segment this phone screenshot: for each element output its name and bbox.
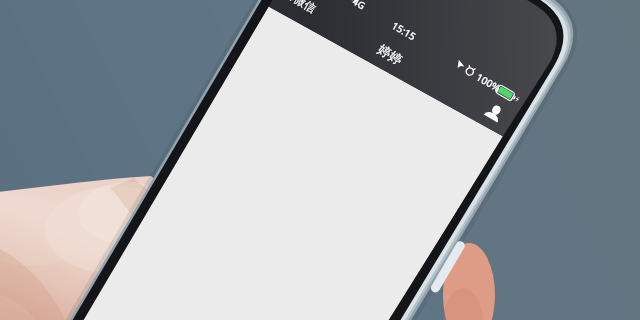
button[interactable]: Contact profile <box>472 93 514 135</box>
button[interactable]: Chat title 婷婷 <box>348 21 432 87</box>
button[interactable]: Chat message list <box>112 104 446 320</box>
button[interactable]: Back to WeChat <box>269 0 337 32</box>
